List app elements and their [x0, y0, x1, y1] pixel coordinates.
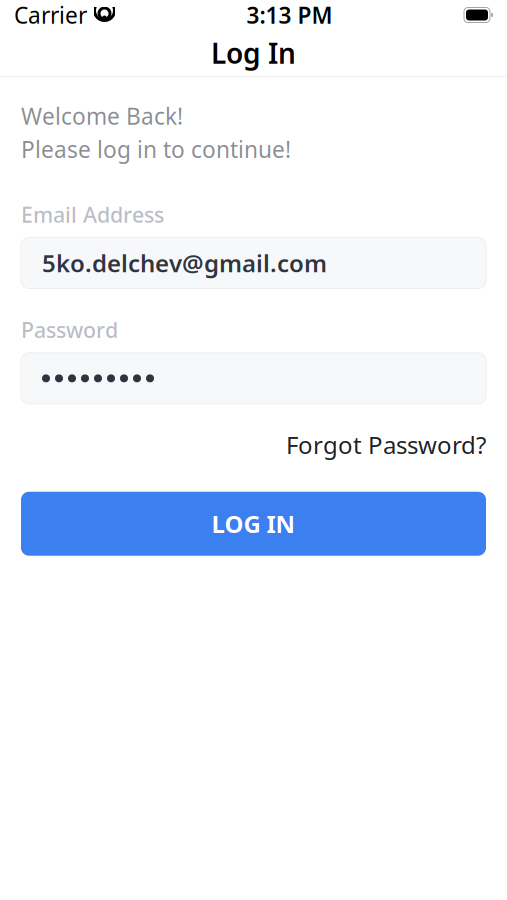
staticText: 5ko.delchev@gmail.com [42, 247, 327, 279]
staticText: LOG IN [211, 508, 295, 540]
staticText: Password [21, 315, 118, 344]
staticText: Welcome Back! [21, 101, 183, 131]
button[interactable]: LOG IN [21, 492, 486, 556]
staticText: Forgot Password? [286, 429, 486, 461]
staticText: 3:13 PM [246, 0, 332, 30]
staticText: Please log in to continue! [21, 134, 291, 164]
staticText: Log In [211, 34, 296, 72]
staticText: Email Address [21, 200, 164, 228]
button[interactable]: Forgot Password? [21, 420, 486, 470]
staticText: Carrier [14, 0, 87, 30]
